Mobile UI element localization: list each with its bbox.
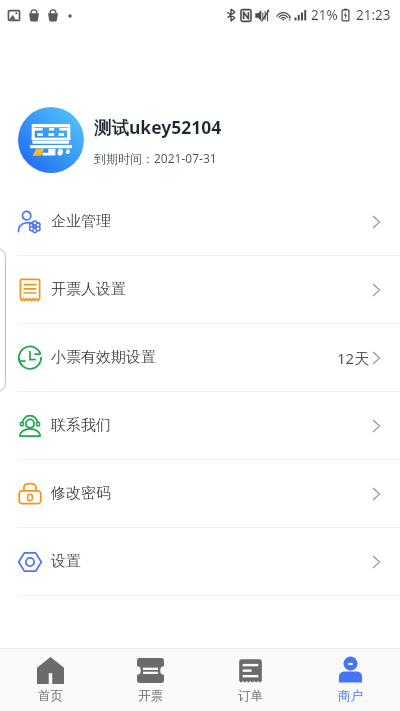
button[interactable]: 订单 [200,649,300,711]
button[interactable]: 设置 [0,528,400,596]
staticText: 订单 [238,688,263,704]
button[interactable]: 开票 [100,649,200,711]
staticText: 21% [311,6,338,24]
staticText: 开票 [138,688,163,704]
staticText: 21:23 [356,6,391,24]
button[interactable]: 小票有效期设置 [0,324,400,392]
staticText: 小票有效期设置 [51,348,156,367]
button[interactable]: 开票人设置 [0,256,400,324]
staticText: 测试ukey52104 [94,115,222,139]
staticText: 首页 [38,688,63,704]
staticText: 联系我们 [51,416,111,435]
staticText: 修改密码 [51,484,111,503]
button[interactable]: 首页 [0,649,100,711]
button[interactable]: 商户 [300,649,400,711]
staticText: 企业管理 [51,212,111,231]
staticText: 设置 [51,552,81,571]
button[interactable]: 企业管理 [0,188,400,256]
staticText: 开票人设置 [51,280,126,299]
staticText: 12天 [337,348,370,368]
button[interactable]: 联系我们 [0,392,400,460]
button[interactable]: 修改密码 [0,460,400,528]
staticText: 到期时间：2021-07-31 [94,150,217,166]
staticText: 商户 [338,688,363,704]
